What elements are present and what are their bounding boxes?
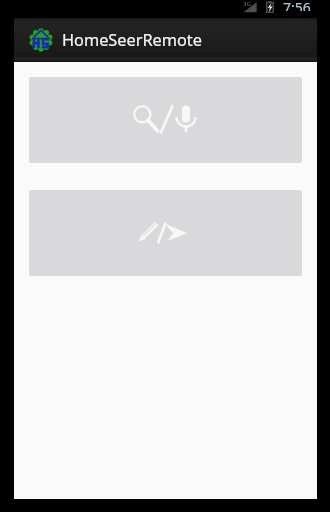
button[interactable]: Write or send	[29, 190, 302, 276]
staticText: 7:56	[283, 0, 311, 11]
staticText: 3G	[243, 0, 251, 8]
button[interactable]: Search or speak	[29, 77, 302, 163]
staticText: HomeSeerRemote	[62, 29, 202, 51]
